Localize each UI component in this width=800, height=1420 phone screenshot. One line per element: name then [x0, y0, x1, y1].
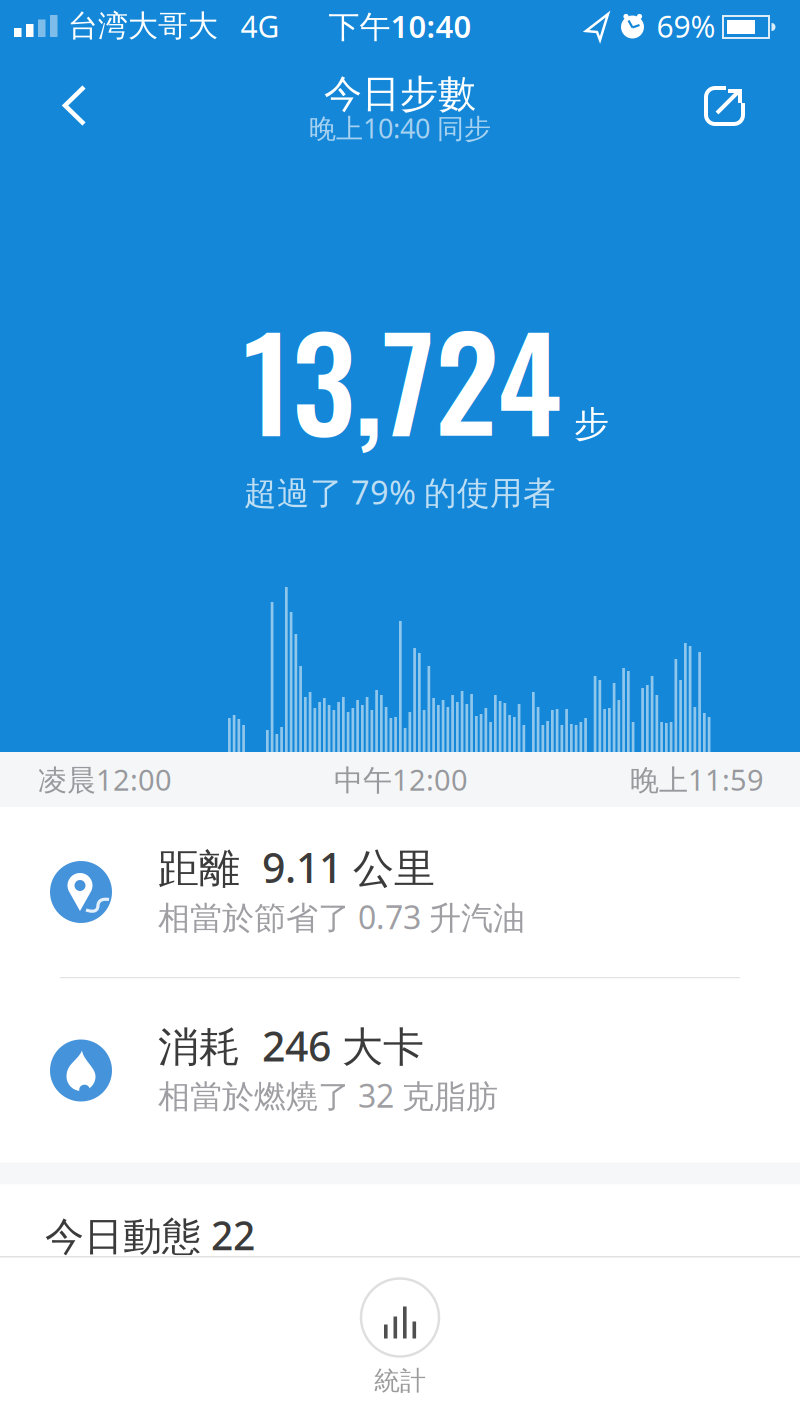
staticText: 今日步數	[324, 70, 476, 118]
button[interactable]: 返回	[0, 0, 130, 170]
staticText: 距離 9.11 公里	[158, 839, 435, 895]
staticText: 相當於燃燒了 32 克脂肪	[158, 1074, 498, 1117]
staticText: 凌晨12:00	[38, 760, 172, 799]
staticText: 13,724	[243, 283, 562, 473]
staticText: 晚上10:40 同步	[309, 110, 491, 146]
staticText: 晚上11:59	[630, 760, 764, 799]
staticText: 今日動態 22	[45, 1208, 255, 1262]
staticText: 中午12:00	[334, 760, 468, 799]
staticText: 69%	[656, 6, 715, 46]
staticText: 消耗 246 大卡	[158, 1018, 424, 1074]
button[interactable]: 分享	[0, 0, 800, 170]
staticText: 統計	[374, 1364, 426, 1397]
staticText: 相當於節省了 0.73 升汽油	[158, 895, 525, 939]
staticText: 4G	[240, 6, 279, 46]
staticText: 台湾大哥大	[68, 7, 218, 45]
staticText: 下午10:40	[328, 5, 471, 47]
staticText: 步	[574, 402, 609, 446]
button[interactable]: 統計	[0, 1256, 800, 1420]
staticText: 超過了 79% 的使用者	[244, 470, 556, 514]
